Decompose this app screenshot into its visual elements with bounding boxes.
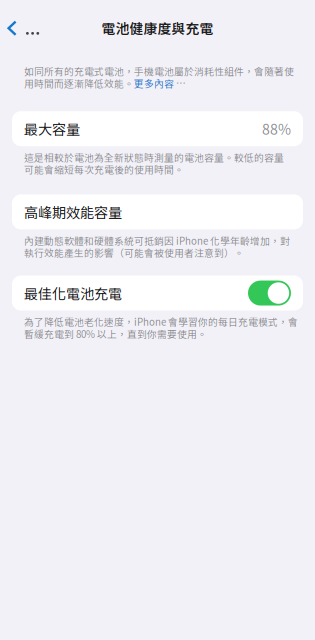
staticText: 最大容量: [24, 118, 80, 139]
staticText: 這是相較於電池為全新狀態時測量的電池容量。較低的容量 可能會縮短每次充電後的使用…: [24, 150, 284, 176]
staticText: 為了降低電池老化速度，iPhone 會學習你的每日充電模式，會 暫緩充電到 80…: [24, 315, 298, 341]
staticText: 電池健康度與充電: [101, 18, 213, 38]
staticText: 如同所有的充電式電池，手機電池屬於消耗性組件，會隨著使: [24, 64, 294, 78]
staticText: 88%: [262, 118, 291, 139]
staticText: 高峰期效能容量: [24, 202, 122, 222]
button[interactable]: Back: [0, 11, 49, 45]
staticText: ⋯: [174, 76, 186, 90]
button[interactable]: 最佳化電池充電: [248, 281, 291, 306]
staticText: 最佳化電池充電: [24, 283, 122, 303]
button[interactable]: 更多內容: [134, 76, 174, 90]
staticText: 更多內容: [134, 76, 174, 90]
button[interactable]: 高峰期效能容量: [12, 194, 303, 229]
staticText: 內建動態軟體和硬體系統可抵銷因 iPhone 化學年齡增加，對 執行效能產生的影…: [24, 233, 290, 260]
staticText: 用時間而逐漸降低效能。: [24, 76, 134, 90]
